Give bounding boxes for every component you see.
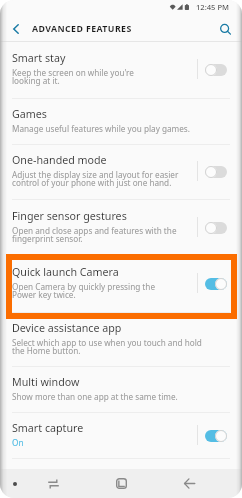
staticText: Manage useful features while you play ga… [12,123,190,134]
button[interactable]: Home [109,469,133,498]
button[interactable]: Back [177,469,201,498]
staticText: 12:45 PM [196,2,230,12]
button[interactable]: Turn on [205,64,227,76]
staticText: Show more than one app at the same time. [12,391,178,402]
button[interactable]: Turn on [205,222,227,234]
staticText: Multi window [12,375,80,390]
button[interactable]: One-handed mode [0,145,242,200]
staticText: One-handed mode [12,153,107,168]
staticText: Games [12,107,47,122]
staticText: Adjust the display size and layout for e… [12,169,179,189]
staticText: Keep the screen on while you're looking … [12,67,134,87]
button[interactable]: Multi window [0,367,242,413]
staticText: Open Camera by quickly pressing the Powe… [12,281,156,301]
button[interactable]: Navigate up [0,17,32,41]
staticText: Device assistance app [12,321,122,336]
staticText: Smart capture [12,421,84,436]
button[interactable]: Smart capture [0,413,242,459]
button[interactable]: Quick launch Camera [0,256,242,313]
button[interactable]: Games [0,99,242,145]
button[interactable]: Recent apps [41,469,65,498]
button[interactable]: Turn on [205,166,227,178]
button[interactable]: Smart stay [0,42,242,99]
staticText: Quick launch Camera [12,265,119,280]
button[interactable]: Device assistance app [0,313,242,367]
button[interactable]: Search [208,17,242,41]
staticText: On [12,437,24,448]
staticText: Open and close apps and features with th… [12,225,177,245]
staticText: Select which app to use when you touch a… [12,337,202,357]
staticText: Finger sensor gestures [12,209,127,224]
button[interactable]: Finger sensor gestures [0,200,242,256]
staticText: ADVANCED FEATURES [32,23,132,35]
button[interactable]: Turn off [205,278,227,290]
button[interactable]: Turn off [205,430,227,442]
staticText: Smart stay [12,51,66,66]
